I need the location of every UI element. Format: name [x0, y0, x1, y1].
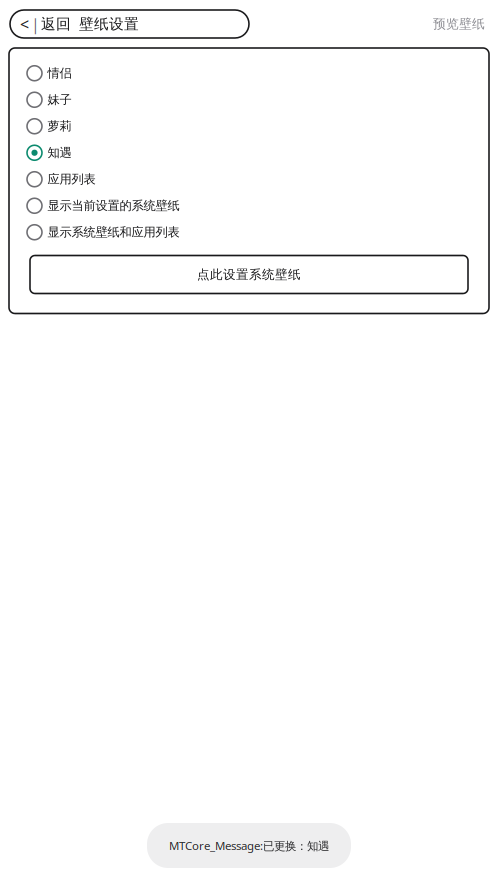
- button[interactable]: 情侣: [9, 60, 489, 86]
- staticText: |: [31, 13, 40, 35]
- staticText: 知遇: [47, 145, 71, 160]
- staticText: 壁纸设置: [79, 15, 139, 33]
- button[interactable]: 萝莉: [9, 113, 489, 139]
- staticText: 应用列表: [47, 171, 95, 187]
- staticText: <: [20, 13, 29, 35]
- staticText: 妹子: [47, 92, 71, 107]
- button[interactable]: 知遇: [9, 139, 489, 166]
- button[interactable]: 显示系统壁纸和应用列表: [9, 219, 489, 245]
- button[interactable]: 应用列表: [9, 166, 489, 192]
- button[interactable]: 预览壁纸: [427, 11, 491, 37]
- staticText: MTCore_Message:已更换：知遇: [169, 838, 329, 853]
- button[interactable]: 点此设置系统壁纸: [30, 255, 468, 293]
- button[interactable]: 妹子: [9, 86, 489, 113]
- button[interactable]: <: [10, 10, 249, 38]
- staticText: 显示当前设置的系统壁纸: [47, 198, 179, 213]
- staticText: 显示系统壁纸和应用列表: [47, 224, 179, 240]
- staticText: 点此设置系统壁纸: [197, 267, 301, 282]
- staticText: 返回: [41, 15, 71, 33]
- button[interactable]: 显示当前设置的系统壁纸: [9, 192, 489, 219]
- staticText: 情侣: [47, 65, 71, 81]
- staticText: 预览壁纸: [433, 16, 485, 32]
- staticText: 萝莉: [47, 118, 71, 134]
